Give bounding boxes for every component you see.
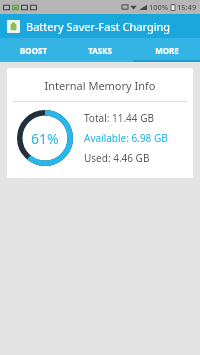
staticText: Internal Memory Info [7,78,193,93]
button[interactable]: MORE [133,38,200,62]
staticText: BOOST [20,45,47,56]
staticText: 15:49 [177,2,197,12]
staticText: TASKS [88,45,112,56]
button[interactable]: TASKS [66,38,133,62]
staticText: 61% [31,129,59,148]
staticText: MORE [155,45,179,56]
staticText: Used: 4.46 GB [84,151,150,165]
button[interactable]: BOOST [0,38,66,62]
staticText: Available: 6.98 GB [84,131,168,145]
staticText: 100% [149,2,169,12]
other: App icon [7,20,20,33]
staticText: Total: 11.44 GB [84,111,154,125]
staticText: Battery Saver-Fast Charging [26,19,171,34]
